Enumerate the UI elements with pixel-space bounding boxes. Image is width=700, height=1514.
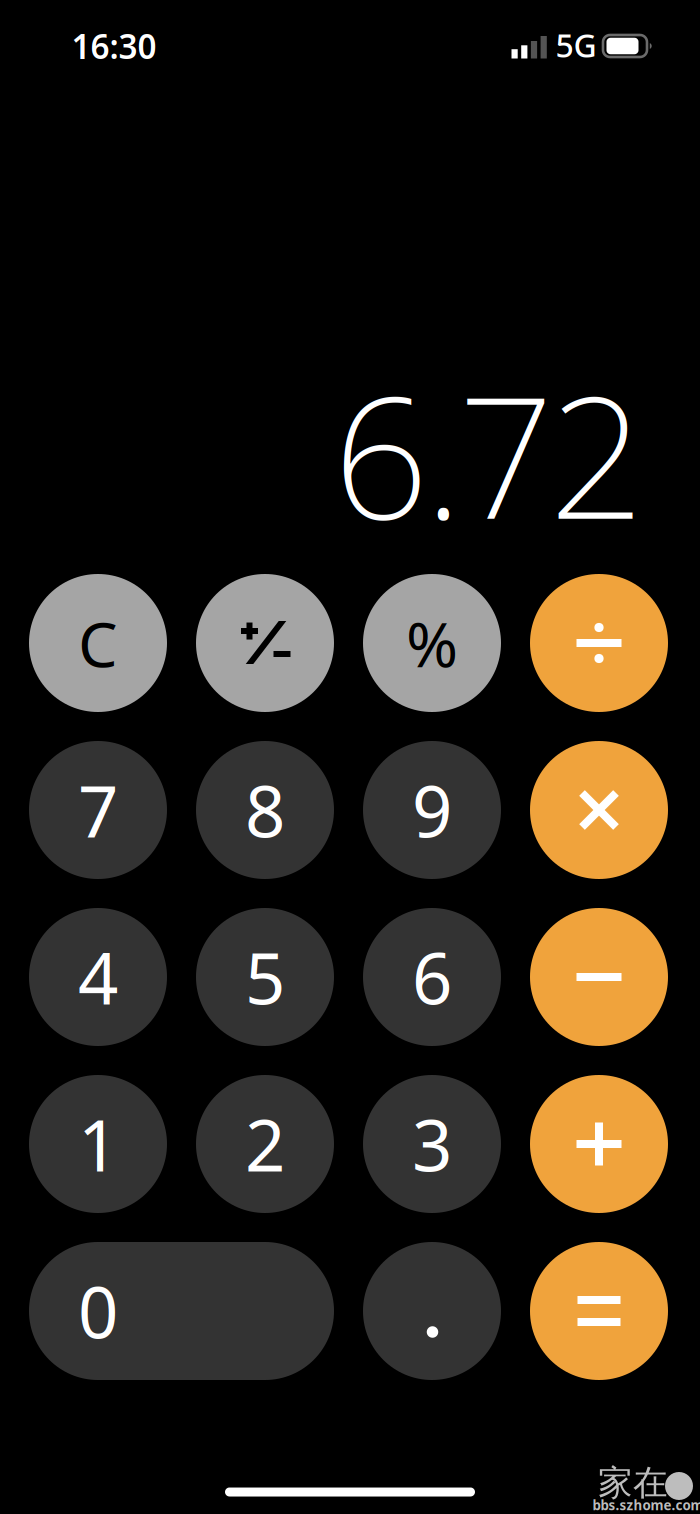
staticText: 8 xyxy=(245,763,285,857)
staticText: 5 xyxy=(245,930,285,1024)
staticText: 0 xyxy=(78,1264,118,1358)
staticText: 6 xyxy=(412,930,452,1024)
button[interactable]: Divide xyxy=(530,574,668,712)
staticText: 16:30 xyxy=(71,24,156,68)
staticText: 9 xyxy=(412,763,452,857)
staticText: 2 xyxy=(245,1097,285,1191)
staticText: 1 xyxy=(78,1097,118,1191)
button[interactable]: C xyxy=(29,574,167,712)
staticText: % xyxy=(406,601,458,685)
button[interactable]: Decimal point xyxy=(363,1242,501,1380)
button[interactable]: Subtract xyxy=(530,908,668,1046)
staticText: 5G xyxy=(555,24,596,66)
button[interactable]: 7 xyxy=(29,741,167,879)
staticText: bbs.szhome.com xyxy=(592,1496,700,1514)
button[interactable]: 8 xyxy=(196,741,334,879)
button[interactable]: 3 xyxy=(363,1075,501,1213)
button[interactable]: 6 xyxy=(363,908,501,1046)
staticText: 7 xyxy=(78,763,118,857)
staticText: 4 xyxy=(78,930,118,1024)
staticText: C xyxy=(78,601,118,685)
button[interactable]: % xyxy=(363,574,501,712)
button[interactable]: Equals xyxy=(530,1242,668,1380)
button[interactable]: 1 xyxy=(29,1075,167,1213)
staticText: 家在 xyxy=(598,1462,668,1504)
button[interactable]: 2 xyxy=(196,1075,334,1213)
button[interactable]: Multiply xyxy=(530,741,668,879)
button[interactable]: Plus minus xyxy=(196,574,334,712)
button[interactable]: 5 xyxy=(196,908,334,1046)
button[interactable]: 9 xyxy=(363,741,501,879)
button[interactable]: Add xyxy=(530,1075,668,1213)
button[interactable]: 4 xyxy=(29,908,167,1046)
button[interactable]: 0 xyxy=(29,1242,334,1380)
staticText: 6.72 xyxy=(333,342,645,565)
staticText: 3 xyxy=(412,1097,452,1191)
